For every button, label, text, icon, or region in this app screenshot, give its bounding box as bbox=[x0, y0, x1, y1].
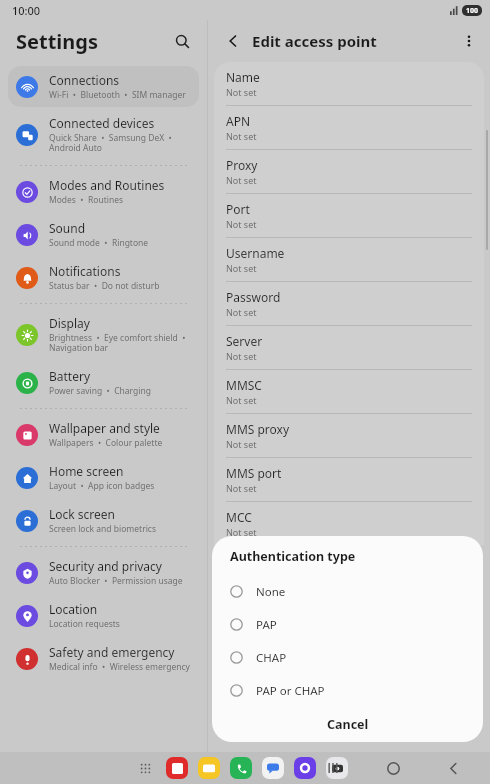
button[interactable]: CHAP bbox=[212, 641, 483, 674]
staticText: Status bar • Do not disturb bbox=[49, 280, 160, 292]
button[interactable]: files bbox=[198, 757, 220, 779]
button[interactable]: internet bbox=[294, 757, 316, 779]
button[interactable]: Connected devices bbox=[8, 109, 199, 160]
button[interactable]: Back bbox=[438, 753, 468, 783]
staticText: Location bbox=[49, 601, 98, 617]
button[interactable]: Notifications bbox=[8, 257, 199, 298]
button[interactable]: MMS proxy bbox=[214, 414, 484, 457]
staticText: Authentication type bbox=[230, 548, 356, 565]
staticText: Security and privacy bbox=[49, 558, 162, 574]
staticText: PAP or CHAP bbox=[256, 683, 325, 699]
staticText: None bbox=[256, 584, 286, 600]
staticText: Not set bbox=[226, 86, 257, 98]
staticText: Username bbox=[226, 245, 285, 261]
staticText: Not set bbox=[226, 482, 257, 494]
button[interactable]: Back bbox=[220, 28, 246, 54]
staticText: Battery bbox=[49, 368, 91, 384]
staticText: Safety and emergency bbox=[49, 644, 175, 660]
button[interactable]: MMS port bbox=[214, 458, 484, 501]
staticText: Not set bbox=[226, 350, 257, 362]
button[interactable]: MCC bbox=[214, 502, 484, 545]
button[interactable]: Recents bbox=[318, 753, 348, 783]
button[interactable]: Apps bbox=[134, 757, 156, 779]
button[interactable]: Username bbox=[214, 238, 484, 281]
staticText: MMS proxy bbox=[226, 421, 290, 437]
staticText: Auto Blocker • Permission usage bbox=[49, 575, 183, 587]
button[interactable]: Display bbox=[8, 309, 199, 360]
staticText: Sound bbox=[49, 220, 86, 236]
staticText: APN bbox=[226, 113, 251, 129]
staticText: Wi-Fi • Bluetooth • SIM manager bbox=[49, 89, 186, 101]
staticText: Not set bbox=[226, 174, 257, 186]
button[interactable]: Home screen bbox=[8, 457, 199, 498]
button[interactable]: PAP or CHAP bbox=[212, 674, 483, 707]
button[interactable]: MMSC bbox=[214, 370, 484, 413]
staticText: Modes and Routines bbox=[49, 177, 165, 193]
button[interactable]: PAP bbox=[212, 608, 483, 641]
button[interactable]: Password bbox=[214, 282, 484, 325]
button[interactable]: Modes and Routines bbox=[8, 171, 199, 212]
button[interactable]: Security and privacy bbox=[8, 552, 199, 593]
staticText: Not set bbox=[226, 130, 257, 142]
staticText: Connections bbox=[49, 72, 120, 88]
staticText: Wallpapers • Colour palette bbox=[49, 437, 163, 449]
staticText: Modes • Routines bbox=[49, 194, 124, 206]
staticText: Not set bbox=[226, 526, 257, 538]
staticText: MMS port bbox=[226, 465, 282, 481]
button[interactable]: Battery bbox=[8, 362, 199, 403]
button[interactable]: Wallpaper and style bbox=[8, 414, 199, 455]
button[interactable]: notes bbox=[166, 757, 188, 779]
staticText: Home screen bbox=[49, 463, 124, 479]
staticText: Connected devices bbox=[49, 115, 155, 131]
staticText: 100 bbox=[466, 6, 479, 16]
button[interactable]: Lock screen bbox=[8, 500, 199, 541]
button[interactable]: camera bbox=[326, 757, 348, 779]
staticText: Layout • App icon badges bbox=[49, 480, 155, 492]
button[interactable]: Server bbox=[214, 326, 484, 369]
staticText: Power saving • Charging bbox=[49, 385, 151, 397]
staticText: Brightness • Eye comfort shield • Naviga… bbox=[49, 332, 186, 354]
staticText: Quick Share • Samsung DeX • Android Auto bbox=[49, 132, 172, 154]
staticText: Medical info • Wireless emergency bbox=[49, 661, 190, 673]
button[interactable]: Port bbox=[214, 194, 484, 237]
staticText: Cancel bbox=[327, 716, 369, 733]
staticText: Name bbox=[226, 69, 260, 85]
staticText: Port bbox=[226, 201, 250, 217]
staticText: Lock screen bbox=[49, 506, 116, 522]
button[interactable]: Connections bbox=[8, 66, 199, 107]
staticText: Screen lock and biometrics bbox=[49, 523, 156, 535]
button[interactable]: msg bbox=[262, 757, 284, 779]
button[interactable]: APN bbox=[214, 106, 484, 149]
button[interactable]: phone bbox=[230, 757, 252, 779]
staticText: 10:00 bbox=[12, 3, 41, 18]
staticText: Wallpaper and style bbox=[49, 420, 160, 436]
staticText: MCC bbox=[226, 509, 252, 525]
staticText: PAP bbox=[256, 617, 277, 633]
staticText: Notifications bbox=[49, 263, 121, 279]
staticText: Not set bbox=[226, 218, 257, 230]
button[interactable]: None bbox=[212, 575, 483, 608]
button[interactable]: Sound bbox=[8, 214, 199, 255]
staticText: MMSC bbox=[226, 377, 262, 393]
button[interactable]: Home bbox=[378, 753, 408, 783]
staticText: Settings bbox=[16, 28, 167, 55]
staticText: Display bbox=[49, 315, 90, 331]
button[interactable]: Search bbox=[167, 26, 197, 56]
button[interactable]: Location bbox=[8, 595, 199, 636]
staticText: Not set bbox=[226, 306, 257, 318]
staticText: Password bbox=[226, 289, 281, 305]
staticText: CHAP bbox=[256, 650, 287, 666]
staticText: Not set bbox=[226, 262, 257, 274]
staticText: Location requests bbox=[49, 618, 120, 630]
button[interactable]: Cancel bbox=[212, 707, 483, 741]
staticText: Not set bbox=[226, 394, 257, 406]
button[interactable]: Name bbox=[214, 62, 484, 105]
staticText: Edit access point bbox=[252, 31, 456, 51]
staticText: Sound mode • Ringtone bbox=[49, 237, 149, 249]
button[interactable]: More options bbox=[456, 28, 482, 54]
staticText: Server bbox=[226, 333, 263, 349]
staticText: Not set bbox=[226, 438, 257, 450]
button[interactable]: Proxy bbox=[214, 150, 484, 193]
button[interactable]: Safety and emergency bbox=[8, 638, 199, 679]
staticText: Proxy bbox=[226, 157, 258, 173]
